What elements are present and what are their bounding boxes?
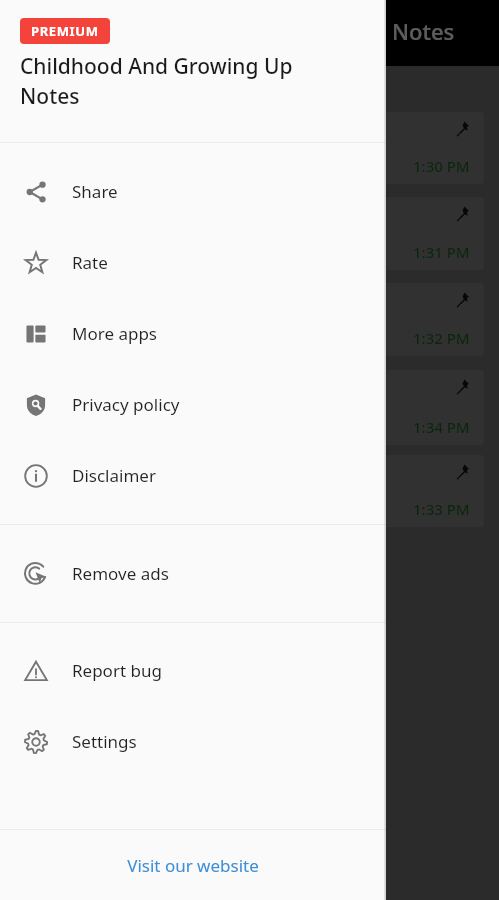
- staticText: Childhood And Growing Up Notes: [20, 52, 350, 110]
- staticText: Remove ads: [72, 562, 169, 585]
- staticText: Privacy policy: [72, 393, 180, 416]
- staticText: 1:30 PM: [413, 156, 470, 176]
- staticText: Visit our website: [127, 854, 259, 877]
- staticText: Share: [72, 180, 118, 203]
- button[interactable]: PREMIUM: [20, 18, 110, 44]
- button[interactable]: 1:30 PM: [296, 112, 484, 184]
- staticText: Report bug: [72, 659, 162, 682]
- button[interactable]: Rate: [0, 227, 386, 298]
- staticText: 1:31 PM: [413, 242, 470, 262]
- button[interactable]: Report bug: [0, 635, 386, 706]
- button[interactable]: 1:31 PM: [296, 197, 484, 270]
- button[interactable]: Remove ads: [0, 538, 386, 609]
- button[interactable]: Share: [0, 156, 386, 227]
- staticText: Disclaimer: [72, 464, 156, 487]
- button[interactable]: Settings: [0, 706, 386, 777]
- staticText: More apps: [72, 322, 157, 345]
- staticText: Settings: [72, 730, 137, 753]
- button[interactable]: [386, 0, 499, 900]
- staticText: 1:32 PM: [413, 328, 470, 348]
- staticText: 1:33 PM: [413, 499, 470, 519]
- staticText: PREMIUM: [31, 22, 99, 40]
- button[interactable]: 1:32 PM: [296, 283, 484, 356]
- button[interactable]: More apps: [0, 298, 386, 369]
- staticText: Notes: [392, 16, 455, 46]
- button[interactable]: 1:33 PM: [296, 455, 484, 527]
- staticText: 1:34 PM: [413, 417, 470, 437]
- button[interactable]: Visit our website: [0, 830, 386, 900]
- button[interactable]: Disclaimer: [0, 440, 386, 511]
- button[interactable]: Privacy policy: [0, 369, 386, 440]
- staticText: Rate: [72, 251, 108, 274]
- button[interactable]: 1:34 PM: [296, 370, 484, 445]
